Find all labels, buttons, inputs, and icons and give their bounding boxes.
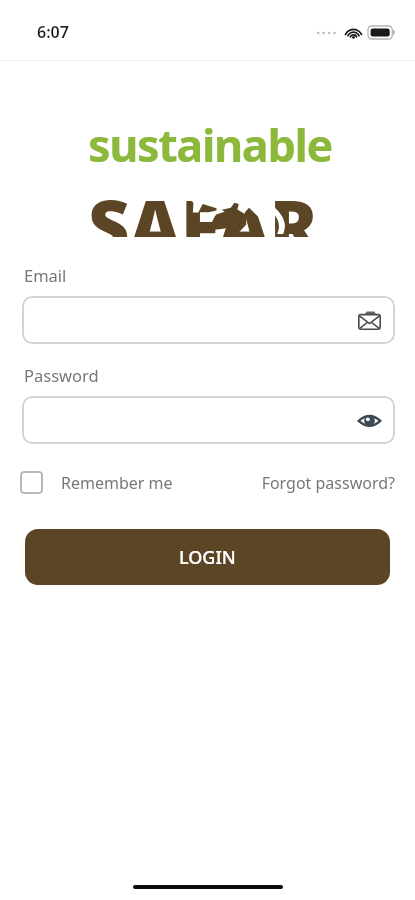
staticText: LOGIN [179,545,236,570]
button[interactable]: Remember me [20,471,179,494]
button[interactable]: Forgot password? [261,472,395,494]
staticText: sustainable [88,114,332,175]
staticText: Email [24,264,67,286]
button[interactable]: LOGIN [25,529,390,585]
staticText: Remember me [61,472,173,494]
staticText: Forgot password? [261,472,395,494]
button[interactable]: Show password [22,396,395,444]
staticText: Password [24,364,99,386]
staticText: 6:07 [37,21,69,43]
button[interactable]: Email icon [22,296,395,344]
button[interactable]: Email icon [354,305,384,335]
button[interactable]: Show password [354,405,384,435]
staticText: SAFARI [88,176,332,237]
